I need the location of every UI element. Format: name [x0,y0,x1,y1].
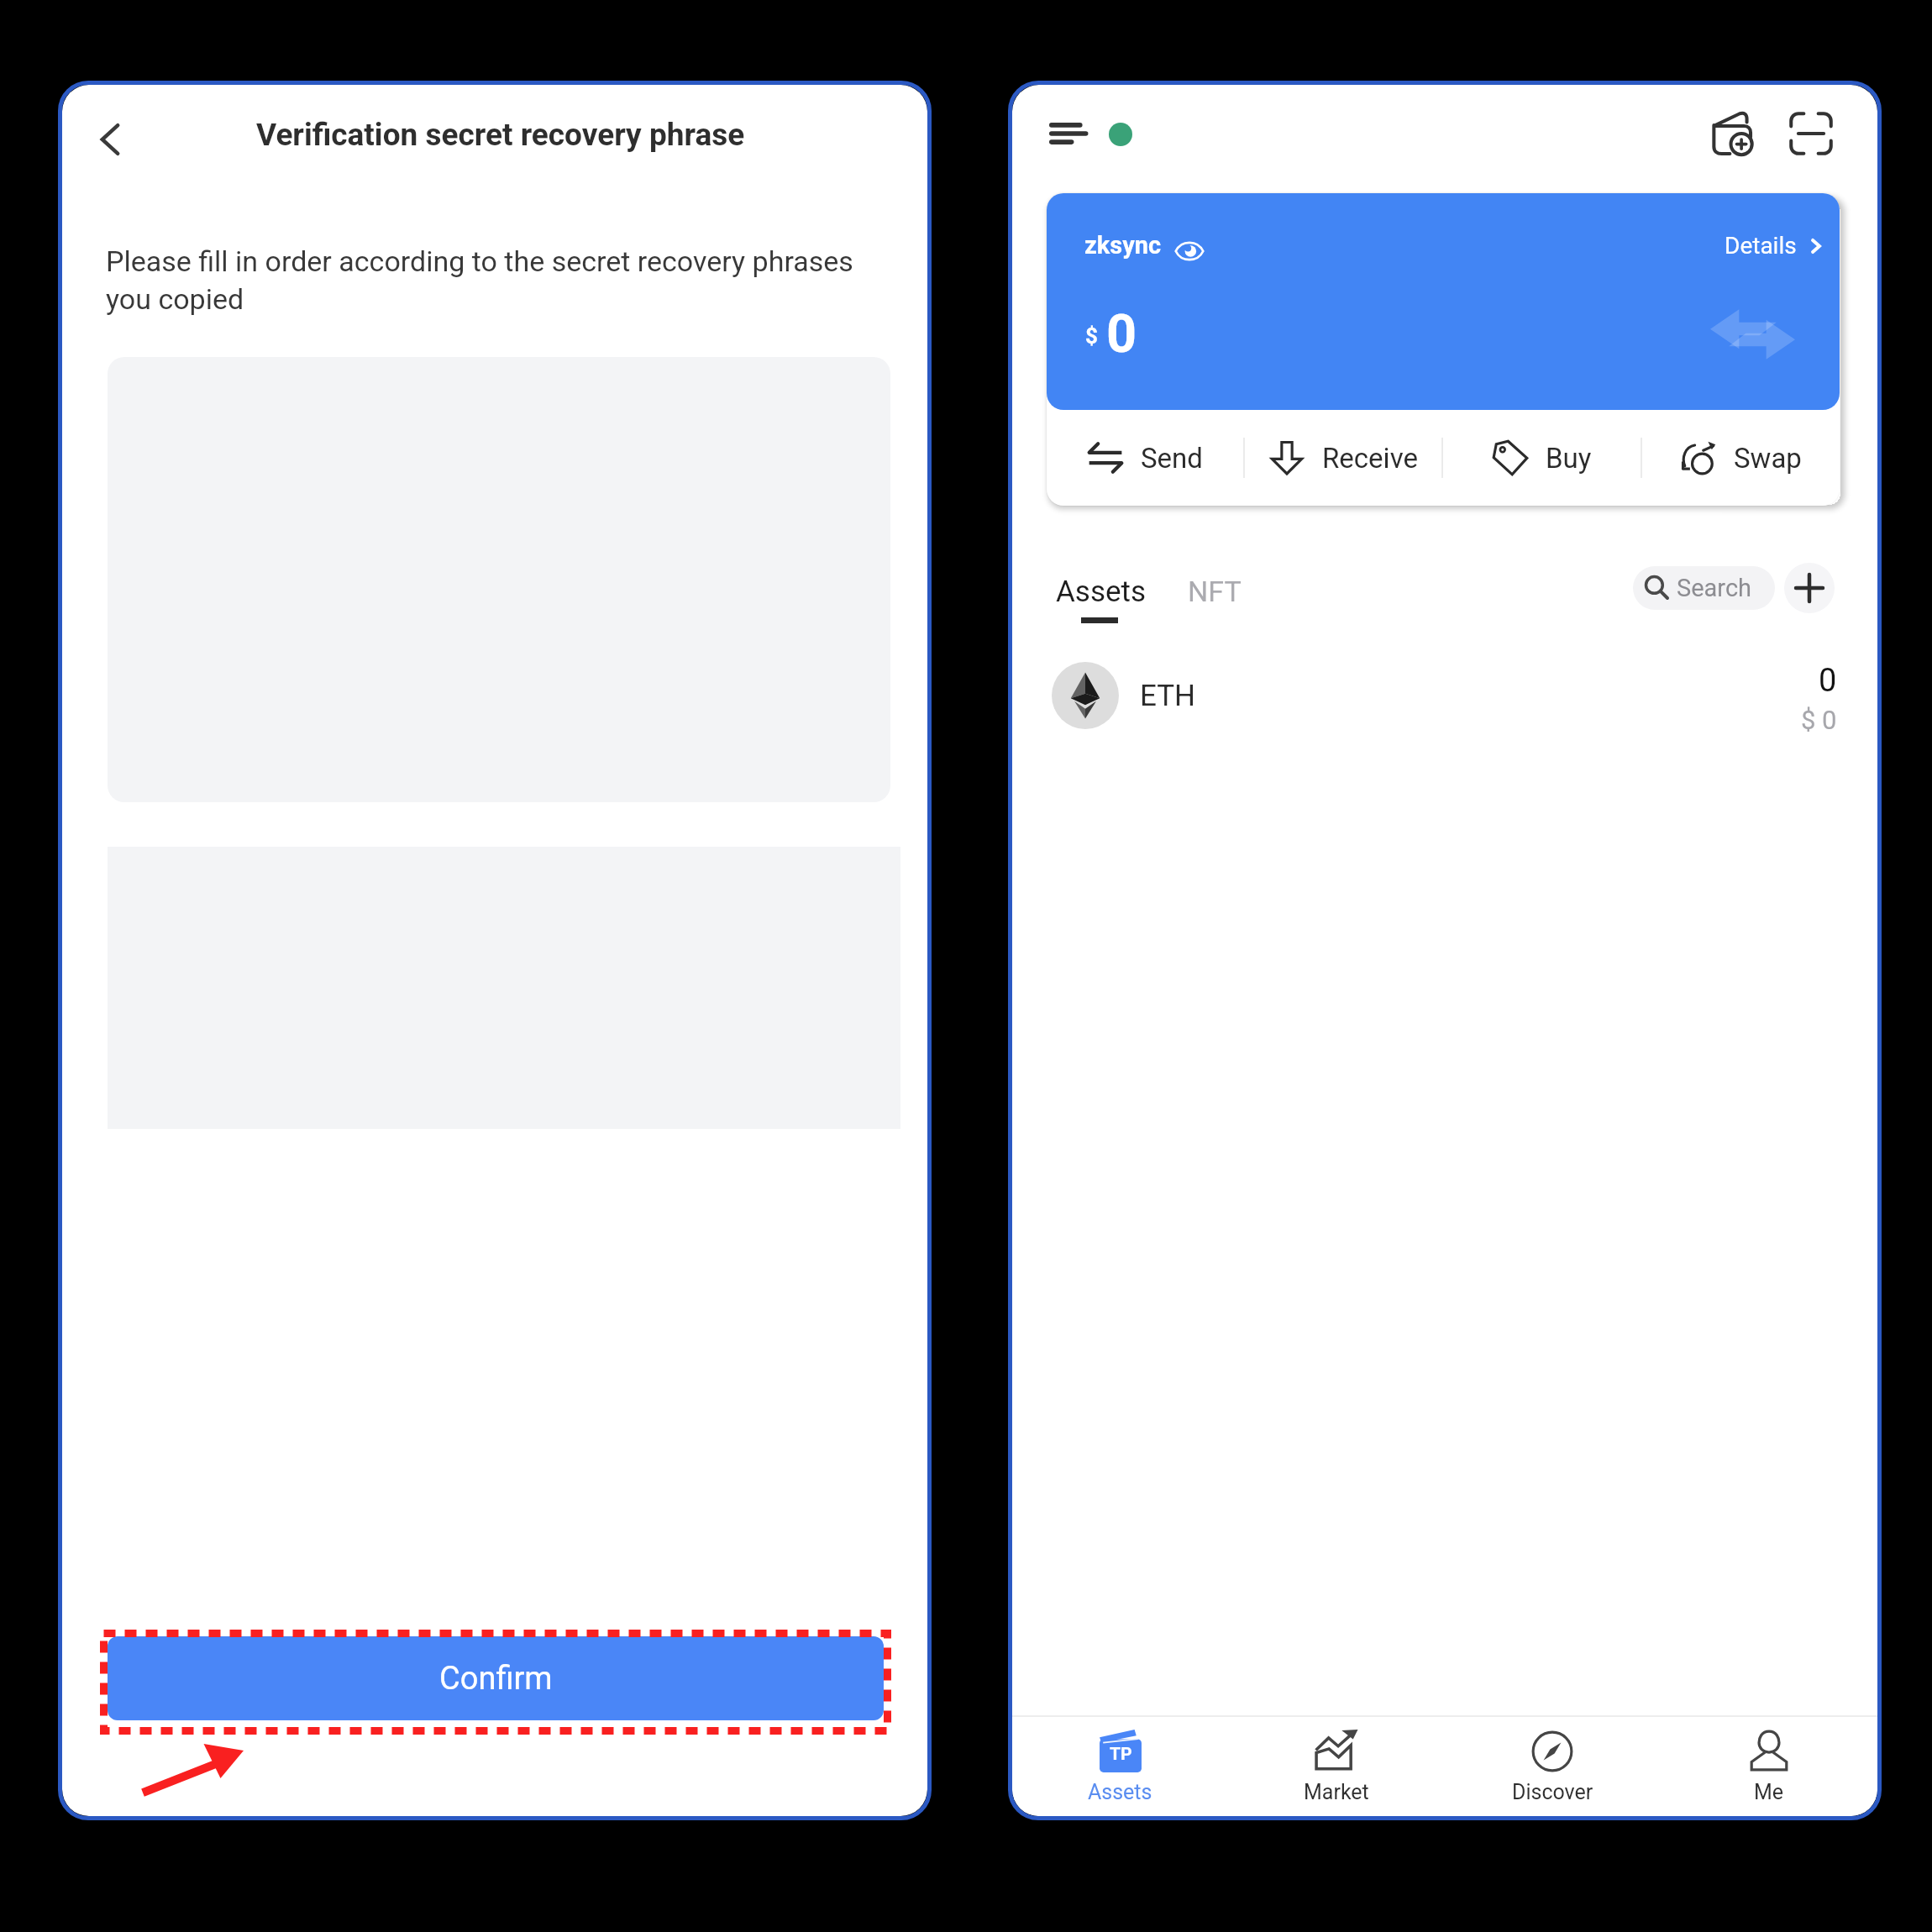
staticText: Market [1304,1780,1369,1804]
staticText: zksync [1084,231,1162,260]
staticText: Discover [1512,1780,1593,1804]
button[interactable]: Assets [1044,558,1155,638]
staticText: Search [1677,574,1752,602]
button[interactable]: Swap [1642,410,1840,506]
staticText: Me [1754,1780,1784,1804]
button[interactable]: zksync [1047,193,1840,410]
button[interactable]: ETH [1012,641,1877,750]
staticText: Verification secret recovery phrase [256,117,745,153]
button[interactable]: NFT [1176,558,1252,638]
button[interactable]: Menu [1035,100,1102,167]
staticText: NFT [1188,575,1242,608]
staticText: Receive [1322,442,1418,475]
staticText: TP [1110,1744,1132,1765]
staticText: 0 [1106,303,1137,365]
staticText: Send [1141,442,1203,475]
staticText: Assets [1056,575,1147,609]
staticText: Buy [1546,442,1592,475]
staticText: $ 0 [1801,705,1837,735]
staticText: Confirm [439,1660,553,1698]
button[interactable]: Send [1047,410,1243,506]
button[interactable]: Back [76,105,144,174]
staticText: ETH [1140,679,1196,713]
button[interactable]: Buy [1443,410,1641,506]
staticText: $ [1085,323,1098,349]
button[interactable]: Me [1661,1730,1877,1804]
staticText: Assets [1088,1780,1152,1804]
staticText: Please fill in order according to the se… [106,244,883,316]
button[interactable]: Add wallet [1699,98,1770,169]
staticText: 0 [1819,662,1837,700]
staticText: Swap [1734,442,1802,475]
button[interactable]: Market [1228,1730,1444,1804]
button[interactable]: Discover [1444,1730,1661,1804]
button[interactable]: Scan [1776,98,1846,169]
button[interactable]: Confirm [108,1636,884,1720]
button[interactable]: Add token [1784,563,1835,613]
button[interactable]: Search [1633,566,1775,610]
staticText: Details [1725,232,1797,260]
button[interactable]: TP [1012,1730,1228,1804]
button[interactable]: Receive [1245,410,1441,506]
